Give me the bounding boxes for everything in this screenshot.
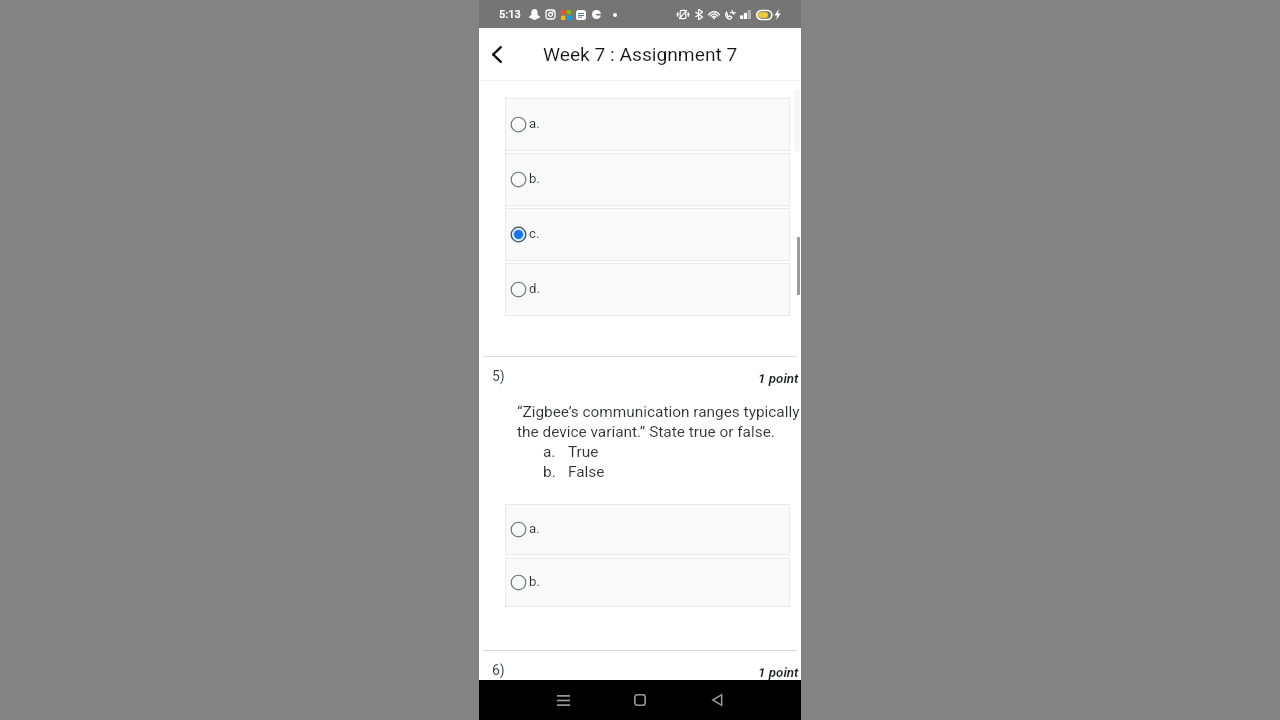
staticText: a. b. (543, 443, 556, 480)
staticText: 6) (492, 662, 505, 678)
staticText: 1 point (758, 665, 799, 681)
button[interactable]: Home (622, 682, 658, 718)
button[interactable]: b. (505, 558, 790, 607)
button[interactable]: d. (505, 263, 790, 316)
staticText: d. (529, 281, 540, 296)
staticText: True False (568, 443, 605, 480)
staticText: 5:13 (499, 8, 521, 21)
staticText: b. (529, 171, 540, 186)
button[interactable]: Back (699, 682, 735, 718)
staticText: 1 point (758, 371, 799, 387)
button[interactable]: Back (480, 37, 514, 71)
staticText: b. (529, 574, 540, 589)
button[interactable]: a. (505, 504, 790, 555)
staticText: c. (529, 226, 540, 241)
button[interactable]: Recent apps (545, 682, 581, 718)
staticText: a. (529, 116, 540, 131)
button[interactable]: c. (505, 208, 790, 261)
staticText: a. (529, 521, 540, 536)
staticText: 5) (492, 368, 505, 384)
staticText: “Zigbee’s communication ranges typically… (517, 403, 801, 440)
button[interactable]: a. (505, 98, 790, 151)
staticText: Week 7 : Assignment 7 (543, 43, 738, 66)
button[interactable]: b. (505, 153, 790, 206)
